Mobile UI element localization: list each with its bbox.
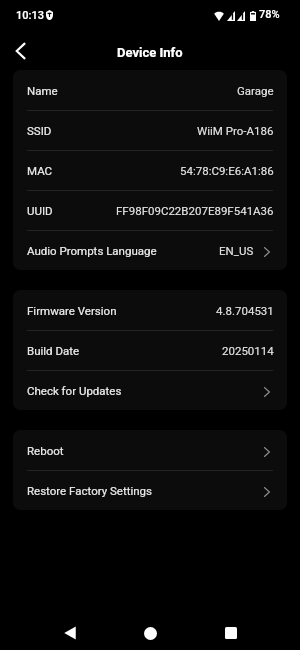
button[interactable]: Recents [210, 616, 251, 650]
staticText: Reboot [27, 444, 64, 457]
staticText: Device Info [117, 45, 183, 60]
button[interactable]: Home [130, 616, 171, 650]
staticText: SSID [27, 124, 52, 137]
button[interactable]: SSID [13, 110, 287, 150]
button[interactable]: Check for Updates [13, 370, 287, 410]
staticText: 4.8.704531 [216, 304, 274, 317]
button[interactable]: Restore Factory Settings [13, 470, 287, 510]
staticText: Audio Prompts Language [27, 244, 157, 257]
staticText: 10:13 [16, 9, 44, 22]
staticText: Garage [237, 84, 274, 97]
staticText: 54:78:C9:E6:A1:86 [180, 164, 274, 177]
staticText: EN_US [219, 244, 254, 257]
staticText: WiiM Pro-A186 [197, 124, 274, 137]
button[interactable]: Firmware Version [13, 290, 287, 330]
button[interactable]: Back [49, 616, 90, 650]
staticText: Firmware Version [27, 304, 117, 317]
staticText: Check for Updates [27, 384, 122, 397]
staticText: Restore Factory Settings [27, 484, 153, 497]
staticText: MAC [27, 164, 53, 177]
staticText: 78% [259, 8, 280, 21]
button[interactable]: MAC [13, 150, 287, 190]
staticText: Build Date [27, 344, 80, 357]
staticText: UUID [27, 204, 53, 217]
button[interactable]: Name [13, 70, 287, 110]
button[interactable]: UUID [13, 190, 287, 230]
staticText: 20250114 [222, 344, 274, 357]
button[interactable]: Build Date [13, 330, 287, 370]
button[interactable]: Back [0, 28, 40, 68]
staticText: FF98F09C22B207E89F541A36 [116, 204, 274, 217]
button[interactable]: Audio Prompts Language [13, 230, 287, 270]
button[interactable]: Reboot [13, 430, 287, 470]
staticText: Name [27, 84, 58, 97]
